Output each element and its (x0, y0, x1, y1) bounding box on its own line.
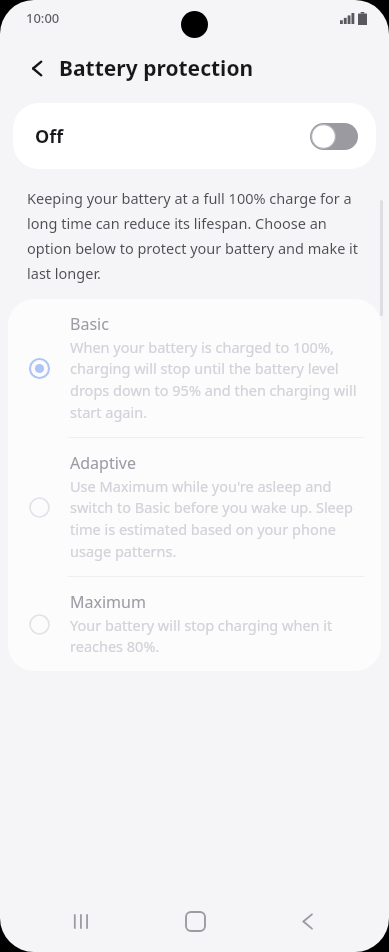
staticText: Off (35, 124, 64, 149)
button[interactable]: Off (13, 103, 376, 169)
staticText: Basic (70, 313, 109, 335)
button[interactable]: Maximum (8, 577, 381, 671)
staticText: Use Maximum while you're asleep and swit… (70, 476, 359, 562)
staticText: 10:00 (26, 9, 60, 27)
staticText: Battery protection (59, 54, 254, 83)
button[interactable]: Recent apps (52, 891, 112, 951)
button[interactable]: Adaptive (8, 438, 381, 576)
staticText: Adaptive (70, 452, 136, 474)
staticText: Your battery will stop charging when it … (70, 615, 359, 657)
staticText: When your battery is charged to 100%, ch… (70, 337, 359, 423)
button[interactable]: Basic (8, 299, 381, 437)
button[interactable]: Navigate up (14, 46, 58, 90)
button[interactable]: Back (277, 891, 337, 951)
staticText: Keeping your battery at a full 100% char… (27, 188, 359, 283)
button[interactable]: Home (165, 891, 225, 951)
staticText: Maximum (70, 591, 146, 613)
